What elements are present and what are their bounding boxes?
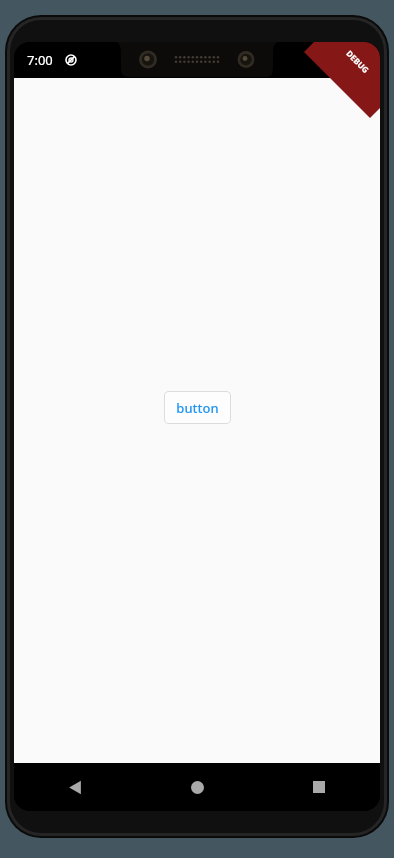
staticText: 7:00 (27, 51, 53, 69)
button[interactable]: button (164, 391, 231, 424)
button[interactable]: Recent apps (258, 763, 380, 811)
staticText: button (176, 399, 219, 417)
button[interactable]: Back (14, 763, 136, 811)
staticText: DEBUG (344, 48, 372, 75)
button[interactable]: Home (136, 763, 258, 811)
